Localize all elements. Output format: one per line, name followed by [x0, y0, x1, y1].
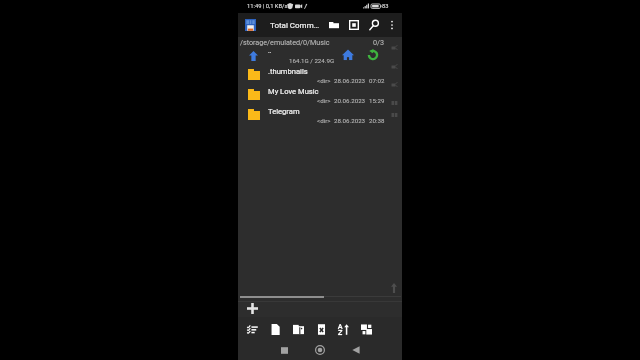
- staticText: <dir>: [317, 97, 331, 104]
- staticText: 20:38: [369, 117, 385, 124]
- button[interactable]: Copy: [267, 321, 283, 337]
- button[interactable]: Home: [341, 48, 355, 62]
- staticText: My Love Music: [268, 87, 319, 96]
- button[interactable]: More options: [382, 15, 402, 35]
- staticText: 0/3: [373, 38, 385, 46]
- button[interactable]: Back: [348, 342, 364, 358]
- staticText: 20.06.2023: [334, 97, 366, 104]
- button[interactable]: Sort: [335, 321, 351, 337]
- button[interactable]: Select all: [344, 15, 364, 35]
- staticText: 83: [382, 3, 389, 10]
- button[interactable]: Move: [290, 321, 306, 337]
- button[interactable]: Quick action 2: [391, 64, 398, 70]
- button[interactable]: Scroll to top: [388, 282, 400, 294]
- button[interactable]: Recents: [276, 342, 292, 358]
- staticText: .thumbnails: [268, 67, 308, 76]
- staticText: 15:29: [369, 97, 385, 104]
- staticText: 07:02: [369, 77, 385, 84]
- button[interactable]: Search: [364, 15, 384, 35]
- button[interactable]: Refresh: [366, 48, 380, 62]
- staticText: 164.1G / 224.9G: [289, 57, 335, 64]
- staticText: 11:49 | 0,1 KB/s: [247, 3, 288, 10]
- staticText: 28.06.2023: [334, 77, 366, 84]
- button[interactable]: My Love Music: [238, 85, 402, 105]
- staticText: ..: [268, 47, 272, 55]
- button[interactable]: New tab: [245, 301, 259, 315]
- button[interactable]: Quick action 4: [391, 100, 398, 106]
- button[interactable]: Properties: [244, 321, 260, 337]
- staticText: Total Comm…: [270, 21, 319, 30]
- staticText: Telegram: [268, 107, 300, 116]
- button[interactable]: Split view: [358, 321, 374, 337]
- button[interactable]: Up one level: [246, 49, 260, 63]
- button[interactable]: Delete: [313, 321, 329, 337]
- staticText: <dir>: [317, 117, 331, 124]
- staticText: /storage/emulated/0/Music: [240, 38, 330, 46]
- button[interactable]: Quick action 5: [391, 112, 398, 118]
- staticText: <dir>: [317, 77, 331, 84]
- button[interactable]: Quick action 3: [391, 82, 398, 88]
- staticText: 28.06.2023: [334, 117, 366, 124]
- button[interactable]: .thumbnails: [238, 65, 402, 85]
- button[interactable]: Home: [312, 342, 328, 358]
- button[interactable]: Folders: [324, 15, 344, 35]
- button[interactable]: Quick action 1: [391, 45, 398, 51]
- button[interactable]: Telegram: [238, 105, 402, 125]
- button[interactable]: Total Commander: [241, 16, 259, 34]
